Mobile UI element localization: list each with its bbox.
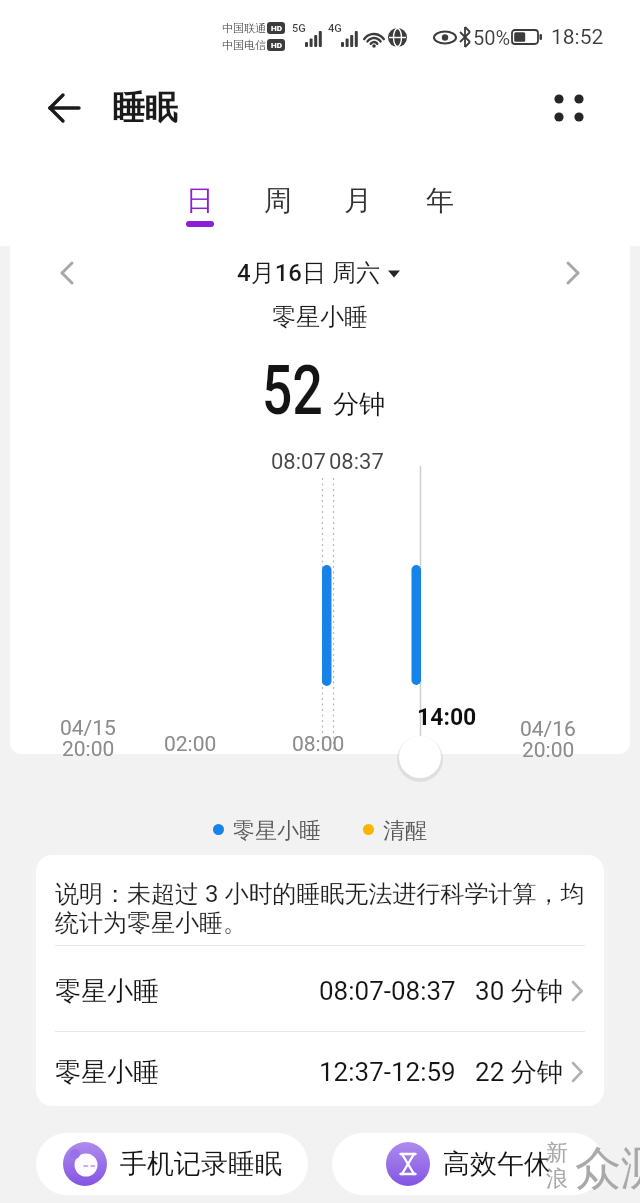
staticText: 04/15	[60, 716, 116, 741]
staticText: 02:00	[164, 732, 217, 757]
staticText: 中国电信	[222, 38, 266, 52]
staticText: 零星小睡	[272, 302, 368, 332]
staticText: 52	[262, 350, 323, 430]
staticText: 高效午休	[443, 1147, 551, 1181]
staticText: 08:00	[292, 732, 345, 757]
staticText: 月	[344, 183, 372, 218]
staticText: 4月16日 周六	[237, 258, 380, 288]
staticText: 分钟	[333, 388, 385, 418]
button[interactable]: 零星小睡	[36, 961, 604, 1021]
button[interactable]	[552, 253, 592, 293]
staticText: 50%	[473, 26, 511, 48]
staticText: 18:52	[551, 25, 604, 49]
staticText: 08:07	[271, 449, 326, 475]
staticText: 中国联通	[222, 21, 266, 35]
staticText: HD	[271, 24, 282, 33]
button[interactable]: 零星小睡	[36, 1042, 604, 1102]
staticText: 08:37	[329, 449, 384, 475]
staticText: 4G	[328, 22, 342, 35]
staticText: 20:00	[522, 738, 575, 763]
staticText: 周	[264, 183, 292, 218]
staticText: 年	[426, 183, 454, 218]
staticText: 零星小睡	[55, 1056, 159, 1089]
button[interactable]: 月	[328, 178, 388, 222]
staticText: 20:00	[62, 737, 115, 762]
staticText: 5G	[292, 22, 306, 35]
button[interactable]	[543, 82, 595, 134]
button[interactable]: 手机记录睡眠	[36, 1133, 308, 1195]
button[interactable]: 高效午休	[332, 1133, 604, 1195]
staticText: 统计为零星小睡。	[55, 908, 247, 938]
button[interactable]: 日	[170, 178, 230, 222]
staticText: 零星小睡	[55, 975, 159, 1008]
staticText: 浪	[546, 1165, 568, 1189]
staticText: 手机记录睡眠	[120, 1147, 282, 1181]
staticText: 新	[546, 1139, 568, 1163]
staticText: 12:37-12:59 22 分钟	[319, 1056, 563, 1089]
button[interactable]	[48, 253, 88, 293]
staticText: 08:07-08:37 30 分钟	[319, 975, 563, 1008]
staticText: 众测	[575, 1140, 640, 1196]
staticText: 日	[186, 183, 214, 218]
button[interactable]: 年	[410, 178, 470, 222]
staticText: 14:00	[417, 704, 477, 731]
staticText: HD	[271, 41, 282, 50]
button[interactable]: 周	[248, 178, 308, 222]
staticText: 说明：未超过 3 小时的睡眠无法进行科学计算，均	[55, 879, 585, 909]
staticText: 清醒	[383, 817, 427, 841]
button[interactable]	[40, 84, 88, 132]
staticText: 零星小睡	[233, 817, 321, 841]
staticText: 睡眠	[112, 87, 178, 129]
staticText: 04/16	[520, 717, 576, 742]
